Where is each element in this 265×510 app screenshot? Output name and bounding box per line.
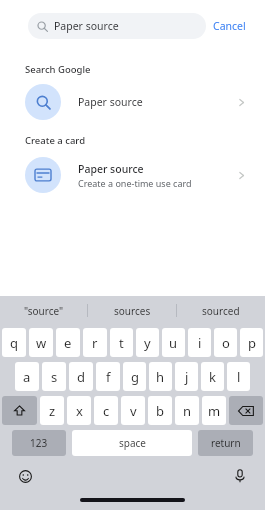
staticText: g	[131, 368, 139, 386]
button[interactable]: i	[188, 328, 211, 357]
staticText: z	[49, 402, 56, 420]
button[interactable]: m	[202, 396, 226, 425]
staticText: p	[248, 334, 256, 352]
staticText: w	[36, 334, 47, 352]
button[interactable]: Paper source	[0, 151, 265, 199]
button[interactable]: n	[175, 396, 199, 425]
button[interactable]: s	[42, 362, 66, 391]
button[interactable]: h	[149, 362, 172, 391]
staticText: r	[92, 334, 98, 352]
button[interactable]: a	[15, 362, 39, 391]
button[interactable]: "source"	[0, 296, 87, 325]
button[interactable]: k	[201, 362, 224, 391]
button[interactable]: f	[96, 362, 120, 391]
button[interactable]: sources	[88, 296, 176, 325]
staticText: s	[51, 368, 58, 386]
staticText: e	[64, 334, 72, 352]
button[interactable]: Emoji	[14, 465, 36, 487]
staticText: "source"	[24, 304, 64, 318]
staticText: h	[156, 368, 165, 386]
staticText: Paper source	[78, 95, 143, 109]
staticText: Search Google	[25, 63, 91, 76]
button[interactable]: Paper source	[28, 13, 206, 39]
staticText: j	[185, 368, 189, 386]
staticText: b	[156, 402, 164, 420]
staticText: o	[222, 334, 230, 352]
staticText: sourced	[202, 304, 240, 318]
button[interactable]: d	[69, 362, 93, 391]
staticText: v	[130, 402, 137, 420]
button[interactable]: Voice input	[229, 465, 251, 487]
button[interactable]: return	[198, 430, 253, 456]
button[interactable]: sourced	[177, 296, 265, 325]
button[interactable]: q	[2, 328, 26, 357]
staticText: l	[237, 368, 241, 386]
button[interactable]: j	[175, 362, 198, 391]
button[interactable]: o	[214, 328, 237, 357]
button[interactable]: w	[29, 328, 53, 357]
button[interactable]: z	[40, 396, 64, 425]
button[interactable]: t	[110, 328, 133, 357]
button[interactable]: space	[72, 430, 192, 456]
button[interactable]: y	[136, 328, 159, 357]
button[interactable]: v	[121, 396, 145, 425]
staticText: Paper source	[54, 19, 119, 33]
button[interactable]: Cancel	[206, 13, 253, 39]
button[interactable]: 123	[12, 430, 66, 456]
staticText: t	[119, 334, 124, 352]
button[interactable]: x	[67, 396, 91, 425]
staticText: q	[10, 334, 18, 352]
staticText: u	[169, 334, 178, 352]
staticText: f	[106, 368, 111, 386]
button[interactable]: g	[123, 362, 146, 391]
button[interactable]: b	[148, 396, 172, 425]
staticText: m	[208, 402, 221, 420]
staticText: y	[144, 334, 151, 352]
staticText: n	[183, 402, 192, 420]
staticText: return	[211, 436, 241, 450]
staticText: c	[103, 402, 110, 420]
button[interactable]: l	[227, 362, 250, 391]
staticText: sources	[114, 304, 151, 318]
staticText: Paper source	[78, 162, 144, 176]
staticText: Cancel	[213, 19, 246, 33]
button[interactable]: Backspace	[229, 396, 263, 425]
button[interactable]: c	[94, 396, 118, 425]
staticText: Create a card	[25, 134, 86, 147]
staticText: Create a one-time use card	[78, 177, 192, 189]
staticText: space	[119, 436, 146, 450]
staticText: k	[209, 368, 216, 386]
button[interactable]: e	[56, 328, 80, 357]
other: Open	[236, 170, 247, 181]
button[interactable]: p	[240, 328, 263, 357]
staticText: i	[198, 334, 202, 352]
button[interactable]: r	[83, 328, 107, 357]
staticText: x	[76, 402, 83, 420]
staticText: a	[23, 368, 31, 386]
staticText: 123	[30, 436, 48, 450]
button[interactable]: u	[162, 328, 185, 357]
button[interactable]: Paper source	[0, 80, 265, 124]
staticText: d	[77, 368, 85, 386]
button[interactable]: Shift	[2, 396, 37, 425]
other: Open	[236, 97, 247, 108]
